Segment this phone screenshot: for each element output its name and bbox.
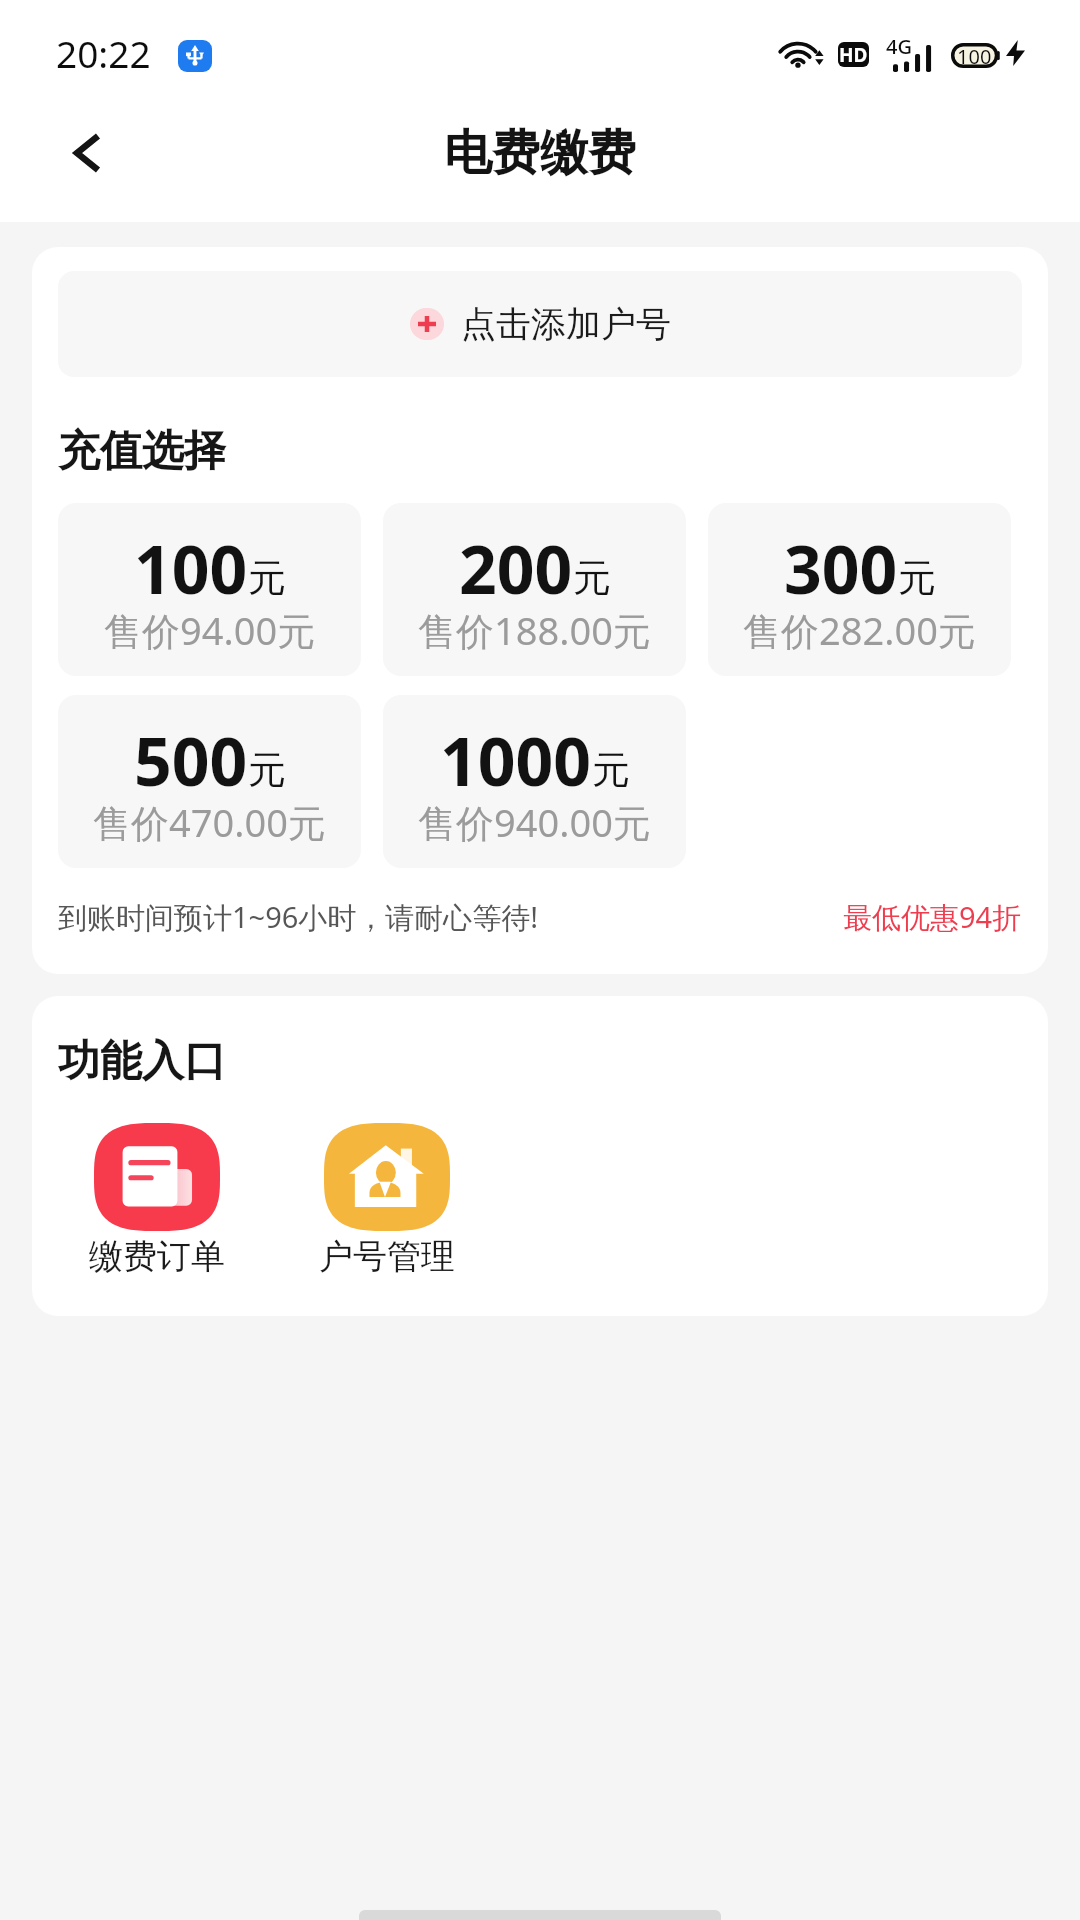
staticText: 点击添加户号: [461, 302, 671, 346]
button[interactable]: 点击添加户号: [58, 271, 1022, 377]
button[interactable]: Back: [42, 108, 132, 198]
staticText: 100: [134, 523, 248, 613]
button[interactable]: 200: [383, 503, 686, 676]
staticText: 元: [573, 554, 611, 602]
button[interactable]: 100: [58, 503, 361, 676]
staticText: 20:22: [56, 28, 151, 78]
staticText: 售价940.00元: [418, 796, 651, 848]
staticText: 缴费订单: [89, 1235, 225, 1278]
staticText: 售价94.00元: [104, 604, 316, 656]
staticText: 元: [898, 554, 936, 602]
button[interactable]: 300: [708, 503, 1011, 676]
staticText: 售价470.00元: [93, 796, 326, 848]
staticText: HD: [839, 42, 868, 67]
staticText: 功能入口: [58, 1035, 226, 1088]
staticText: 元: [592, 746, 630, 794]
staticText: 电费缴费: [444, 123, 636, 183]
staticText: 元: [248, 554, 286, 602]
button[interactable]: 500: [58, 695, 361, 868]
staticText: 4G: [886, 33, 912, 60]
staticText: 售价188.00元: [418, 604, 651, 656]
staticText: 100: [957, 43, 992, 68]
staticText: 到账时间预计1~96小时，请耐心等待!: [58, 897, 539, 937]
staticText: 500: [134, 715, 248, 805]
staticText: 最低优惠94折: [843, 897, 1022, 937]
staticText: 售价282.00元: [743, 604, 976, 656]
staticText: 元: [248, 746, 286, 794]
staticText: 1000: [440, 715, 592, 805]
button[interactable]: 户号管理: [319, 1123, 455, 1278]
button[interactable]: 1000: [383, 695, 686, 868]
staticText: 300: [784, 523, 898, 613]
button[interactable]: 缴费订单: [89, 1123, 225, 1278]
staticText: 充值选择: [58, 425, 226, 478]
staticText: 户号管理: [319, 1235, 455, 1278]
staticText: 200: [459, 523, 573, 613]
